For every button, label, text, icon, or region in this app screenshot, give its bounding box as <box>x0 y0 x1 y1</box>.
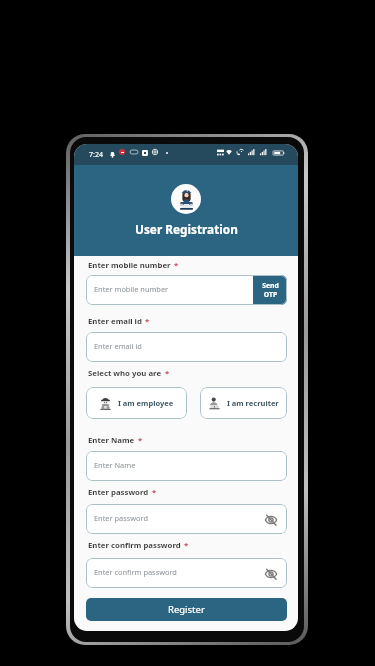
button[interactable]: Enter mobile number <box>94 275 253 305</box>
button[interactable]: Enter password <box>86 504 287 534</box>
staticText: Enter email id <box>94 341 142 351</box>
staticText: Enter confirm password <box>94 567 177 577</box>
staticText: Enter confirm password <box>88 540 181 551</box>
button[interactable]: Enter Name <box>86 451 287 481</box>
button[interactable]: Register <box>86 598 287 621</box>
staticText: Enter Name <box>88 435 135 446</box>
staticText: Send OTP <box>262 281 279 299</box>
staticText: Enter Name <box>94 460 136 470</box>
staticText: Enter mobile number <box>88 260 171 271</box>
staticText: I am recruiter <box>227 398 279 408</box>
staticText: * <box>184 540 189 551</box>
staticText: Enter password <box>88 487 149 498</box>
button[interactable]: Enter email id <box>86 332 287 362</box>
button[interactable]: Show password <box>264 567 278 580</box>
staticText: * <box>138 435 143 446</box>
button[interactable]: I am employee <box>86 387 187 419</box>
staticText: * <box>145 316 150 327</box>
staticText: Enter password <box>94 513 148 523</box>
staticText: I am employee <box>118 398 174 408</box>
staticText: * <box>152 487 157 498</box>
staticText: Select who you are <box>88 368 162 379</box>
staticText: * <box>165 368 170 379</box>
staticText: 7:24 <box>89 150 103 160</box>
staticText: * <box>174 260 179 271</box>
button[interactable]: Show password <box>264 513 278 526</box>
staticText: Enter mobile number <box>94 284 169 294</box>
button[interactable]: I am recruiter <box>200 387 287 419</box>
staticText: User Registration <box>135 221 238 237</box>
button[interactable]: Enter confirm password <box>86 558 287 588</box>
button[interactable]: Send OTP <box>253 275 287 305</box>
staticText: Enter email id <box>88 316 142 327</box>
staticText: Register <box>168 603 205 616</box>
